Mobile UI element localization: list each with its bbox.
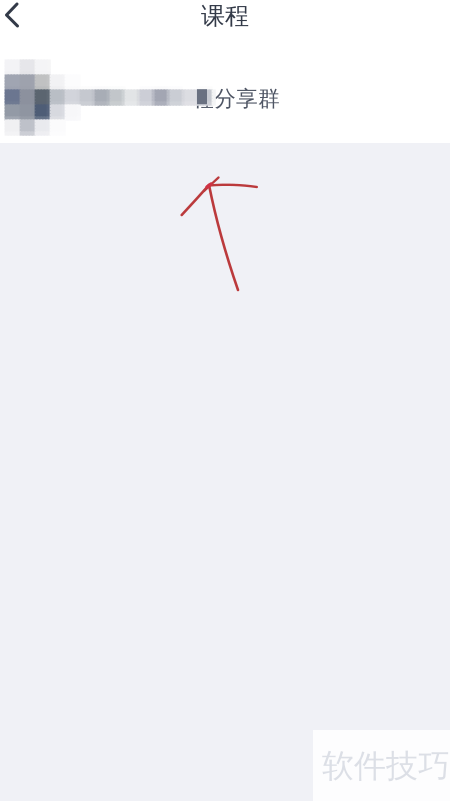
staticText: 课程 xyxy=(201,1,249,31)
staticText: 程分享群 xyxy=(192,85,280,112)
button[interactable]: 程分享群 xyxy=(0,53,450,143)
button[interactable]: Back xyxy=(0,0,46,35)
staticText: 软件技巧 xyxy=(322,746,450,786)
